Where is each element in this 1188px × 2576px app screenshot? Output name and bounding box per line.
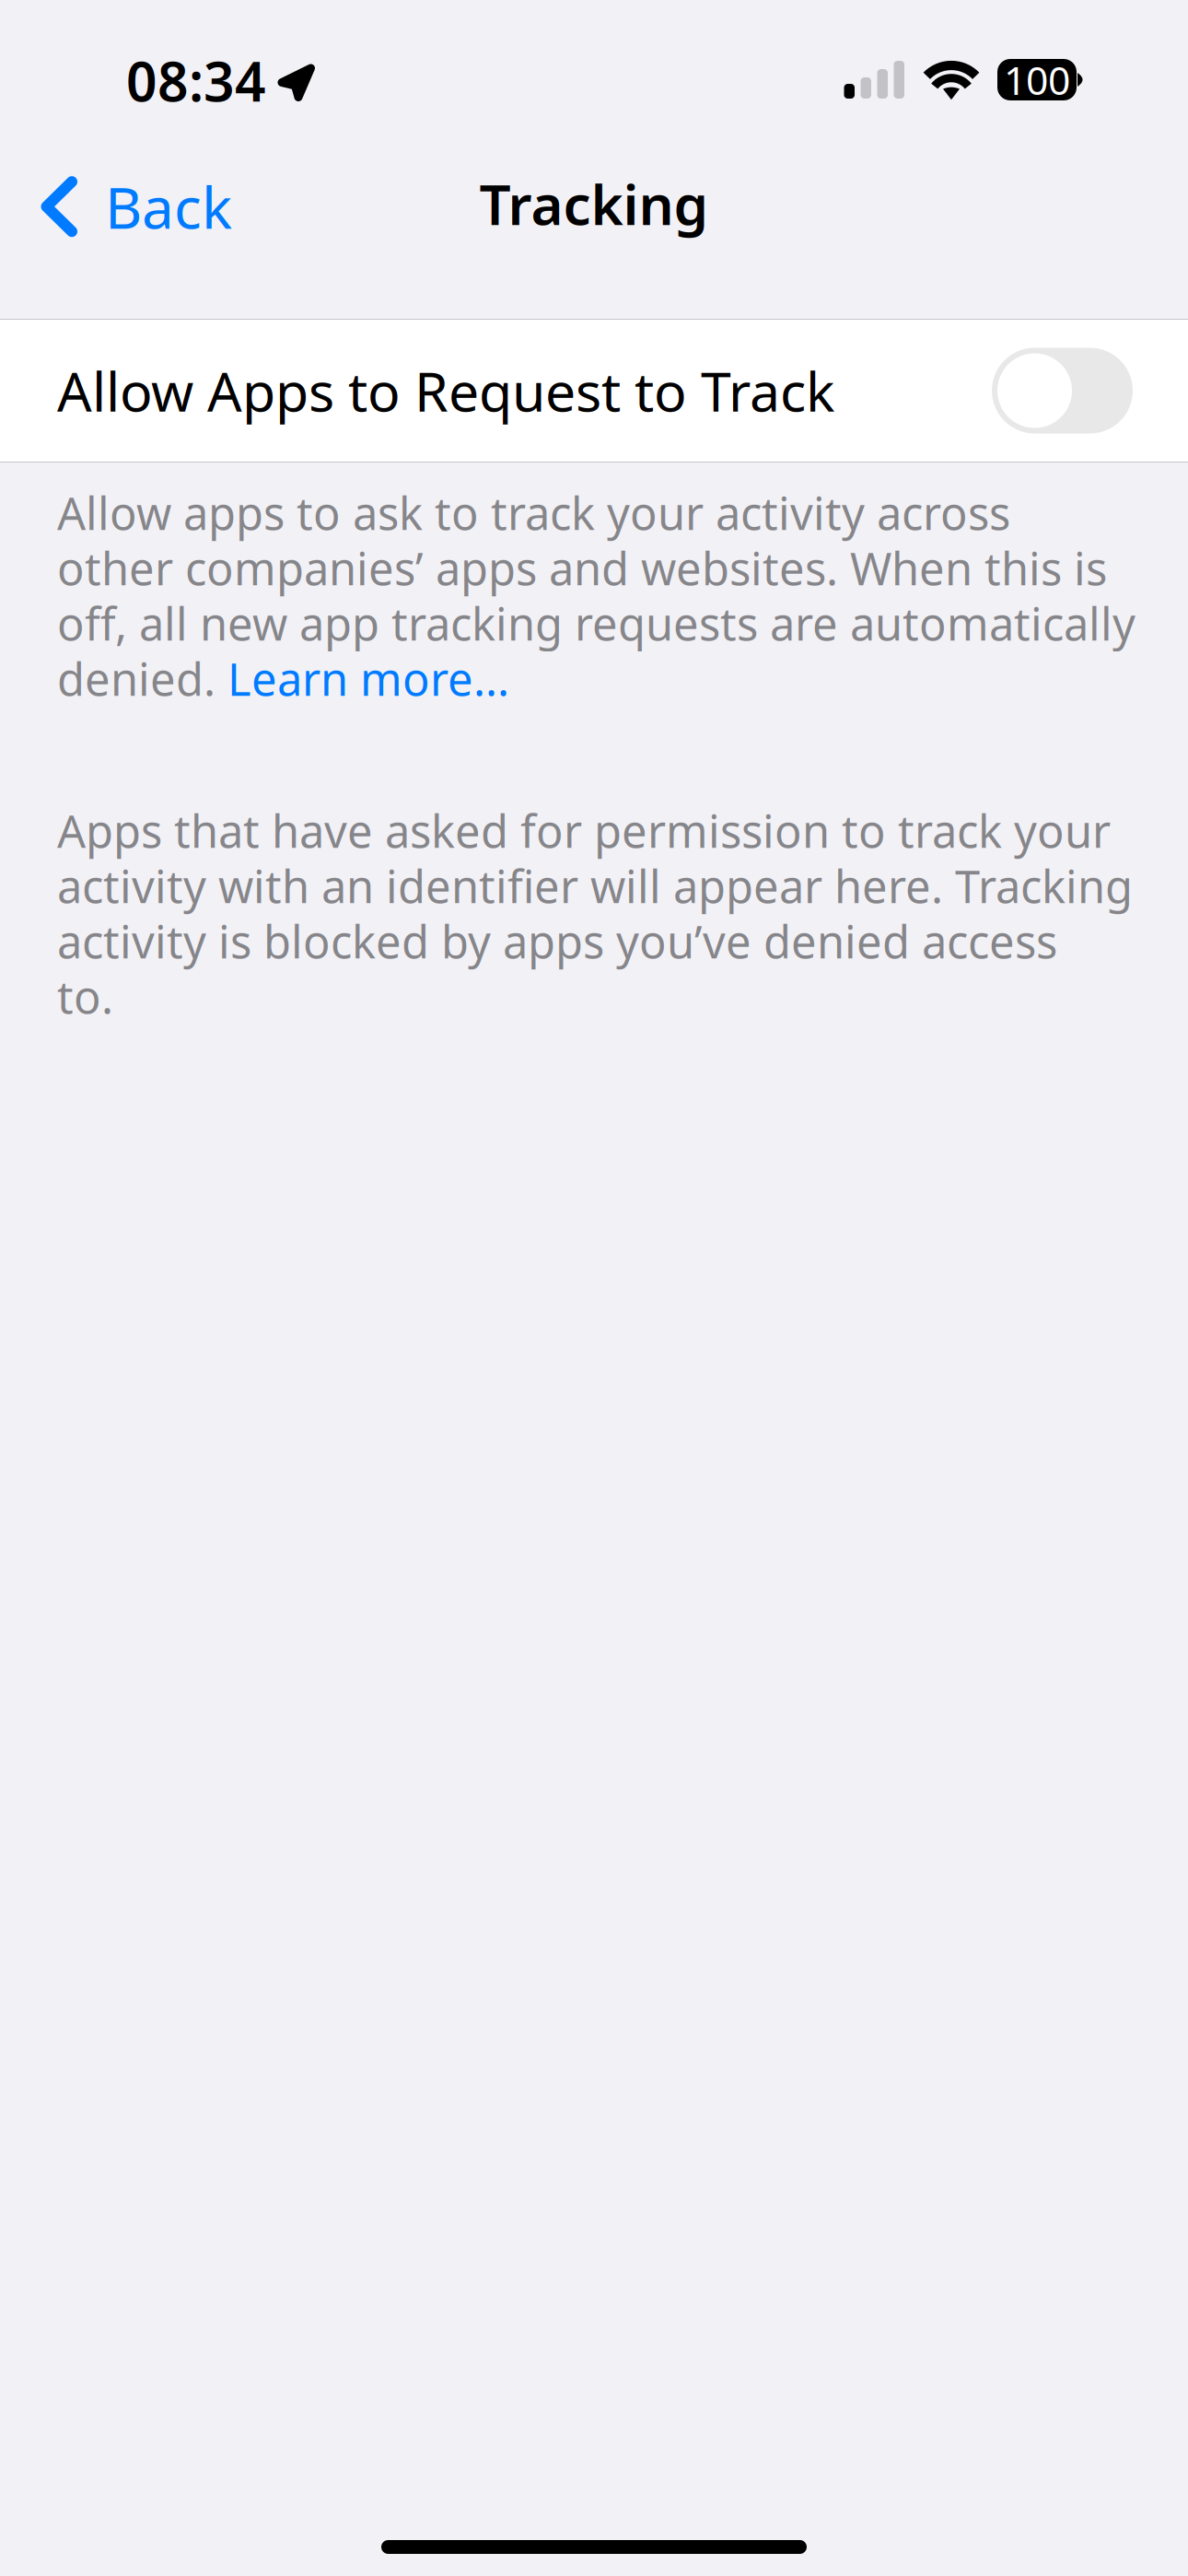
staticText: other companies’ apps and websites. When…: [57, 537, 1107, 598]
staticText: 08:34: [126, 44, 266, 117]
staticText: Back: [105, 168, 232, 245]
staticText: 100: [1004, 53, 1070, 106]
staticText: Tracking: [479, 166, 709, 241]
button[interactable]: Allow Apps to Request to Track: [0, 320, 1188, 462]
staticText: Allow apps to ask to track your activity…: [57, 482, 1010, 543]
staticText: Apps that have asked for permission to t…: [57, 800, 1111, 861]
staticText: Allow Apps to Request to Track: [57, 354, 834, 428]
staticText: off, all new app tracking requests are a…: [57, 592, 1136, 654]
staticText: Learn more...: [227, 648, 509, 709]
staticText: denied.: [57, 648, 227, 709]
button[interactable]: Allow Apps to Request to Track: [992, 348, 1133, 433]
staticText: to.: [57, 966, 113, 1027]
staticText: activity is blocked by apps you’ve denie…: [57, 910, 1057, 972]
staticText: activity with an identifier will appear …: [57, 855, 1133, 916]
button[interactable]: Learn more...: [227, 648, 509, 709]
button[interactable]: Back: [0, 149, 256, 271]
